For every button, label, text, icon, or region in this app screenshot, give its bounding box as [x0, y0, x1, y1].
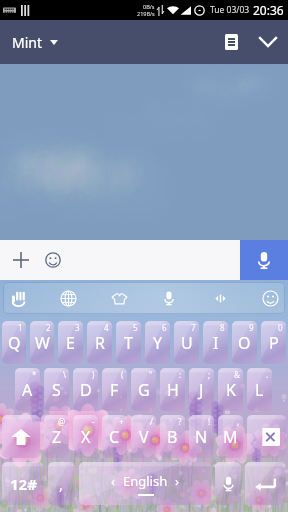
staticText: 2: [46, 322, 51, 333]
staticText: &: [234, 369, 240, 380]
staticText: (: [121, 369, 124, 380]
staticText: !: [208, 416, 211, 427]
button[interactable]: Emoji: [38, 245, 68, 275]
button[interactable]: Emoji: [256, 284, 284, 312]
staticText: D: [80, 379, 92, 401]
staticText: Z: [52, 426, 62, 448]
staticText: H: [167, 379, 179, 401]
staticText: N: [195, 426, 208, 448]
staticText: ,: [237, 416, 240, 427]
button[interactable]: G: [131, 368, 156, 411]
button[interactable]: Z: [44, 415, 69, 458]
staticText: C: [109, 426, 120, 448]
staticText: J: [199, 379, 204, 401]
button[interactable]: Voice input: [240, 240, 288, 280]
button[interactable]: Enter: [245, 462, 286, 505]
button[interactable]: U: [174, 321, 199, 364]
staticText: /: [150, 416, 153, 427]
button[interactable]: Move cursor: [206, 284, 234, 312]
staticText: V: [139, 426, 149, 448]
staticText: 219B/s: [137, 10, 155, 17]
staticText: 20:36: [253, 2, 284, 18]
button[interactable]: Voice: [215, 462, 241, 505]
button[interactable]: Voice input: [155, 284, 183, 312]
button[interactable]: P: [261, 321, 286, 364]
staticText: I: [213, 332, 219, 354]
staticText: A: [22, 379, 33, 401]
staticText: ‹: [111, 472, 116, 490]
staticText: O: [238, 332, 251, 354]
staticText: +: [119, 416, 124, 427]
button[interactable]: Comma: [48, 462, 75, 505]
button[interactable]: A: [15, 368, 40, 411]
button[interactable]: Mint: [6, 25, 64, 60]
button[interactable]: E: [58, 321, 83, 364]
button[interactable]: O: [232, 321, 257, 364]
button[interactable]: J: [189, 368, 214, 411]
button[interactable]: R: [87, 321, 112, 364]
button[interactable]: Handwriting: [4, 284, 32, 312]
button[interactable]: Themes: [105, 284, 133, 312]
button[interactable]: C: [102, 415, 127, 458]
button[interactable]: S: [44, 368, 69, 411]
button[interactable]: M: [218, 415, 243, 458]
staticText: S: [52, 379, 61, 401]
staticText: ": [149, 369, 153, 380]
staticText: X: [81, 426, 91, 448]
button[interactable]: F: [102, 368, 127, 411]
staticText: *: [32, 369, 37, 380]
staticText: 12#: [10, 474, 37, 494]
staticText: 6: [162, 322, 167, 333]
button[interactable]: H: [160, 368, 185, 411]
button[interactable]: L: [247, 368, 272, 411]
staticText: Tue 03/03: [210, 4, 250, 16]
staticText: 4: [104, 322, 109, 333]
staticText: 0B/s: [143, 3, 155, 10]
staticText: W: [35, 332, 50, 354]
staticText: 7: [191, 322, 196, 333]
staticText: ›: [175, 472, 180, 490]
staticText: R: [95, 332, 105, 354]
button[interactable]: Q: [2, 321, 26, 364]
button[interactable]: I: [203, 321, 228, 364]
staticText: 1: [18, 322, 23, 333]
staticText: .: [266, 369, 269, 380]
staticText: T: [124, 332, 133, 354]
staticText: L: [255, 379, 264, 401]
staticText: English: [123, 472, 168, 490]
staticText: ;: [208, 369, 211, 380]
button[interactable]: Language: [54, 284, 82, 312]
staticText: E: [66, 332, 75, 354]
staticText: @: [58, 416, 66, 427]
button[interactable]: Menu: [214, 20, 248, 64]
button[interactable]: Y: [145, 321, 170, 364]
button[interactable]: Space: [79, 462, 211, 505]
staticText: 3: [75, 322, 80, 333]
button[interactable]: D: [73, 368, 98, 411]
button[interactable]: N: [189, 415, 214, 458]
staticText: Q: [8, 332, 21, 354]
staticText: :: [179, 369, 182, 380]
staticText: 0: [278, 322, 283, 333]
staticText: Mint: [12, 33, 43, 52]
button[interactable]: V: [131, 415, 156, 458]
staticText: 9: [249, 322, 254, 333]
staticText: -: [92, 416, 95, 427]
staticText: F: [110, 379, 119, 401]
button[interactable]: Add attachment: [6, 245, 36, 275]
staticText: \: [63, 369, 66, 380]
button[interactable]: Collapse: [251, 20, 285, 64]
button[interactable]: Shift: [2, 415, 40, 458]
button[interactable]: B: [160, 415, 185, 458]
button[interactable]: K: [218, 368, 243, 411]
button[interactable]: Delete: [247, 415, 286, 458]
staticText: B: [167, 426, 178, 448]
staticText: G: [138, 379, 150, 401]
button[interactable]: W: [30, 321, 54, 364]
staticText: ): [92, 369, 95, 380]
staticText: K: [226, 379, 236, 401]
button[interactable]: T: [116, 321, 141, 364]
button[interactable]: Symbols: [2, 462, 44, 505]
staticText: M: [223, 426, 238, 448]
button[interactable]: X: [73, 415, 98, 458]
